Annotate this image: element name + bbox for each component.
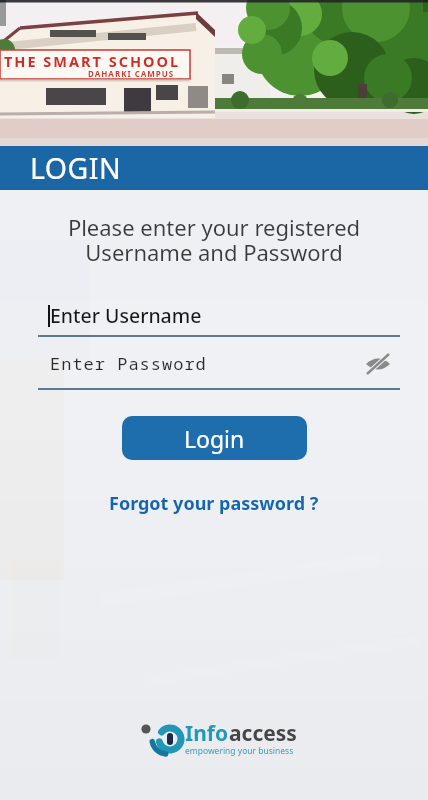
staticText: LOGIN bbox=[30, 149, 122, 188]
staticText: Enter Username bbox=[50, 302, 202, 329]
staticText: Please enter your registered Username an… bbox=[0, 212, 428, 268]
staticText: access bbox=[229, 719, 297, 748]
button[interactable]: Forgot your password ? bbox=[109, 491, 319, 516]
button[interactable]: Enter Password bbox=[38, 352, 400, 390]
staticText: Info bbox=[185, 719, 229, 748]
staticText: THE SMART SCHOOL bbox=[4, 51, 181, 71]
button[interactable]: Login bbox=[122, 416, 307, 460]
staticText: empowering your business bbox=[185, 745, 294, 757]
staticText: DAHARKI CAMPUS bbox=[88, 68, 175, 79]
staticText: Login bbox=[184, 423, 245, 454]
button[interactable]: Enter Username bbox=[38, 302, 400, 337]
staticText: Enter Password bbox=[50, 352, 207, 375]
